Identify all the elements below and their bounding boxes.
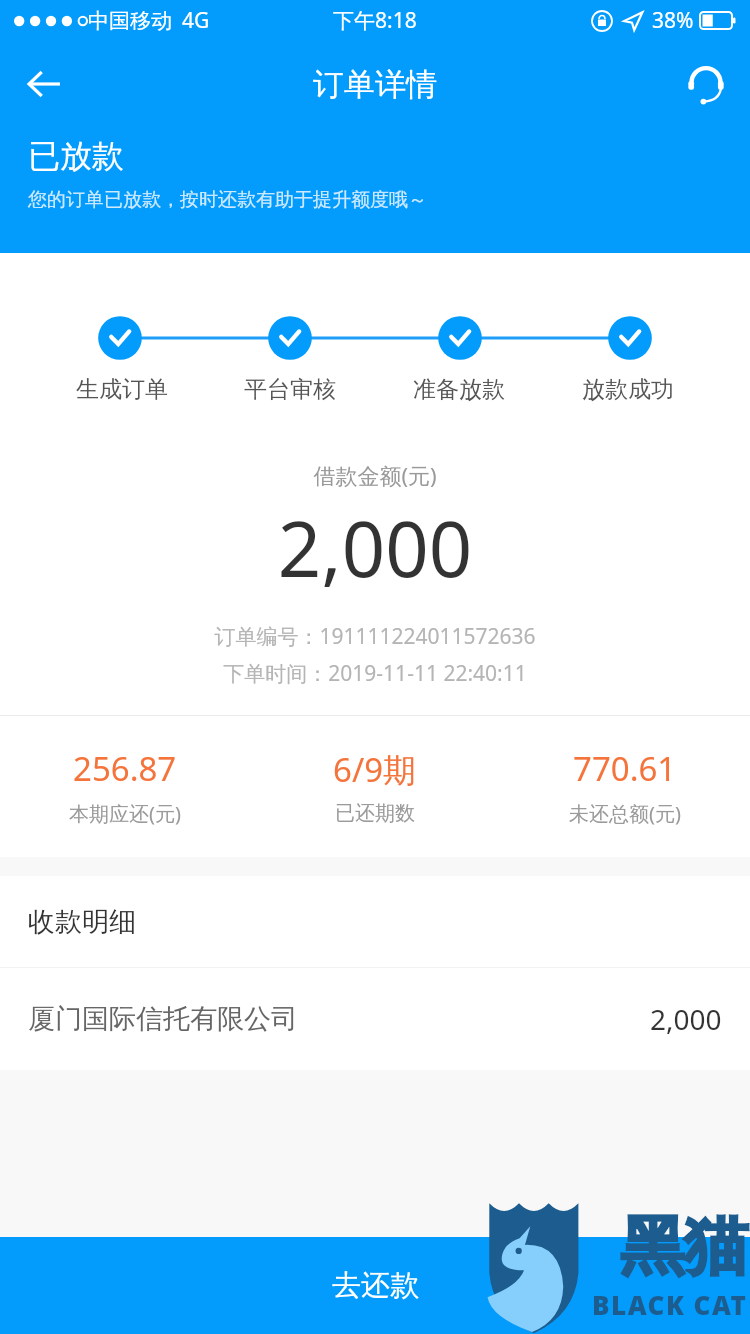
staticText: 已放款 (28, 136, 124, 176)
staticText: 已还期数 (335, 801, 415, 826)
staticText: 256.87 (73, 746, 177, 791)
staticText: 平台审核 (244, 375, 336, 404)
button[interactable]: 770.61 (500, 746, 750, 827)
staticText: 收款明细 (28, 905, 136, 939)
button[interactable]: 6/9期 (250, 747, 500, 826)
staticText: 您的订单已放款，按时还款有助于提升额度哦～ (28, 188, 427, 212)
staticText: 订单编号：191111224011572636 (0, 622, 750, 651)
button[interactable]: 去还款 (0, 1237, 750, 1334)
staticText: 订单详情 (313, 65, 437, 104)
staticText: 38% (652, 6, 694, 35)
staticText: BLACK CAT (592, 1287, 748, 1322)
staticText: 去还款 (332, 1267, 419, 1304)
staticText: 中国移动 (88, 8, 172, 34)
button[interactable]: 厦门国际信托有限公司 (0, 968, 750, 1070)
button[interactable]: Customer service (662, 40, 750, 128)
staticText: 准备放款 (413, 375, 505, 404)
staticText: 黑猫 (620, 1206, 748, 1287)
staticText: 下单时间：2019-11-11 22:40:11 (0, 659, 750, 688)
staticText: 厦门国际信托有限公司 (28, 1002, 298, 1036)
staticText: 4G (182, 6, 210, 35)
staticText: 生成订单 (76, 375, 168, 404)
staticText: 放款成功 (582, 375, 674, 404)
button[interactable]: 256.87 (0, 746, 250, 827)
staticText: 2,000 (650, 1000, 722, 1038)
staticText: 770.61 (573, 746, 677, 791)
staticText: 本期应还(元) (69, 800, 181, 827)
staticText: 下午8:18 (333, 6, 417, 35)
staticText: 2,000 (0, 496, 750, 600)
staticText: 借款金额(元) (0, 460, 750, 490)
staticText: 未还总额(元) (569, 800, 681, 827)
staticText: 6/9期 (333, 747, 417, 792)
button[interactable]: Back (0, 40, 88, 128)
